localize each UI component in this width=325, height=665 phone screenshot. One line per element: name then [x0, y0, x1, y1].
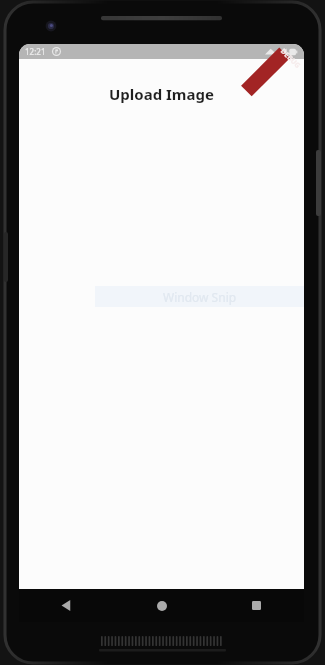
button[interactable]: Recent apps — [209, 589, 304, 622]
staticText: 12:21 — [25, 46, 46, 57]
button[interactable]: Upload Image — [19, 84, 304, 104]
staticText: DEBUG — [278, 47, 303, 71]
staticText: Window Snip — [163, 289, 237, 305]
staticText: Upload Image — [109, 84, 214, 104]
button[interactable]: Home — [114, 589, 209, 622]
button[interactable]: Back — [19, 589, 114, 622]
